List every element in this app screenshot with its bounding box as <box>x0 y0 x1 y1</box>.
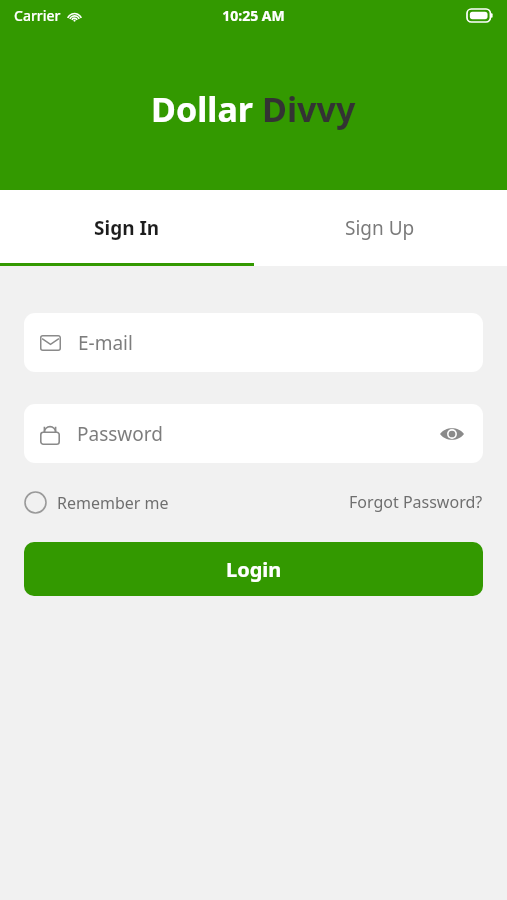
staticText: 10:25 AM <box>222 6 285 25</box>
button[interactable]: Sign In <box>0 190 253 266</box>
button[interactable]: Login <box>24 542 483 596</box>
staticText: Login <box>226 556 282 583</box>
staticText: Password <box>77 421 163 447</box>
staticText: Divvy <box>262 86 356 132</box>
button[interactable]: Remember me <box>24 491 175 514</box>
button[interactable]: E-mail <box>24 313 483 372</box>
staticText: Remember me <box>57 492 169 514</box>
staticText: Forgot Password? <box>349 491 483 513</box>
button[interactable]: Password <box>24 404 483 463</box>
staticText: Carrier <box>14 6 61 25</box>
staticText: Sign In <box>94 215 160 241</box>
staticText: Sign Up <box>345 215 415 241</box>
button[interactable]: Forgot Password? <box>349 491 483 513</box>
staticText: Dollar <box>151 86 262 132</box>
staticText: E-mail <box>78 330 133 356</box>
button[interactable]: Show password <box>437 419 467 449</box>
button[interactable]: Sign Up <box>253 190 507 266</box>
